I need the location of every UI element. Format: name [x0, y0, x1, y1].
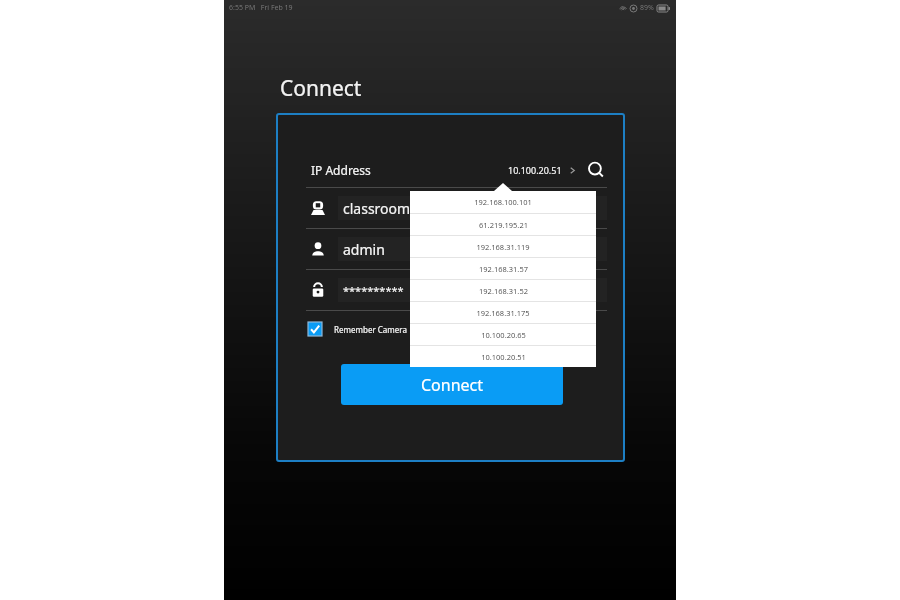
button[interactable]: IP Address [278, 153, 623, 187]
staticText: IP Address [311, 162, 371, 178]
button[interactable]: 192.168.31.57 [410, 258, 596, 279]
staticText: ********** [343, 283, 404, 298]
staticText: 192.168.31.52 [479, 286, 528, 296]
staticText: 192.168.31.175 [476, 308, 530, 318]
staticText: classroom [343, 199, 411, 218]
button[interactable]: 61.219.195.21 [410, 214, 596, 235]
button[interactable]: 10.100.20.65 [410, 324, 596, 345]
staticText: Connect [280, 74, 362, 103]
button[interactable]: Remember Camera [278, 311, 623, 347]
button[interactable]: 10.100.20.51 [410, 346, 596, 367]
staticText: Remember Camera [334, 324, 407, 335]
staticText: 192.168.31.57 [479, 264, 528, 274]
staticText: 89% [640, 3, 654, 13]
button[interactable]: classroom [278, 188, 623, 228]
button[interactable]: Connect [341, 364, 563, 405]
staticText: 10.100.20.51 [481, 352, 526, 362]
staticText: 6:55 PM Fri Feb 19 [229, 3, 293, 13]
button[interactable]: ********** [278, 270, 623, 310]
button[interactable]: admin [278, 229, 623, 269]
staticText: admin [343, 240, 385, 259]
staticText: 10.100.20.51 [508, 164, 562, 176]
staticText: 192.168.100.101 [474, 197, 532, 207]
staticText: 192.168.31.119 [476, 242, 530, 252]
button[interactable]: 192.168.100.101 [410, 191, 596, 213]
other: Search [587, 161, 605, 179]
staticText: 10.100.20.65 [481, 330, 526, 340]
button[interactable]: 192.168.31.175 [410, 302, 596, 323]
button[interactable]: 192.168.31.52 [410, 280, 596, 301]
staticText: Connect [421, 374, 484, 396]
button[interactable]: 192.168.31.119 [410, 236, 596, 257]
staticText: 61.219.195.21 [479, 220, 528, 230]
